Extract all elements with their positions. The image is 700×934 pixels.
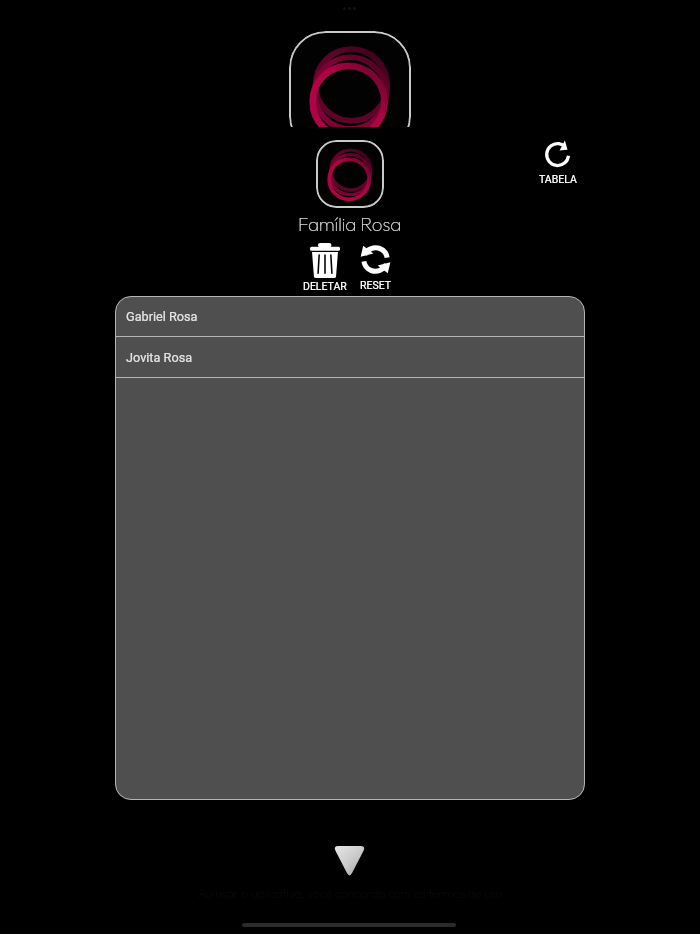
staticText: TABELA bbox=[539, 173, 577, 185]
staticText: DELETAR bbox=[303, 280, 347, 292]
other: Deletar bbox=[310, 243, 340, 278]
button[interactable]: Reset bbox=[354, 242, 397, 291]
staticText: Gabriel Rosa bbox=[126, 309, 198, 324]
staticText: Família Rosa bbox=[298, 212, 402, 235]
button[interactable]: Tabela bbox=[530, 140, 586, 185]
other: Reset bbox=[360, 244, 391, 275]
button[interactable]: Deletar bbox=[301, 243, 348, 292]
button[interactable]: Expandir bbox=[333, 846, 366, 878]
button[interactable]: Gabriel Rosa bbox=[115, 296, 585, 336]
other: Tabela bbox=[545, 140, 571, 166]
staticText: RESET bbox=[360, 279, 392, 291]
button[interactable]: Jovita Rosa bbox=[115, 337, 585, 377]
staticText: Jovita Rosa bbox=[126, 350, 193, 365]
